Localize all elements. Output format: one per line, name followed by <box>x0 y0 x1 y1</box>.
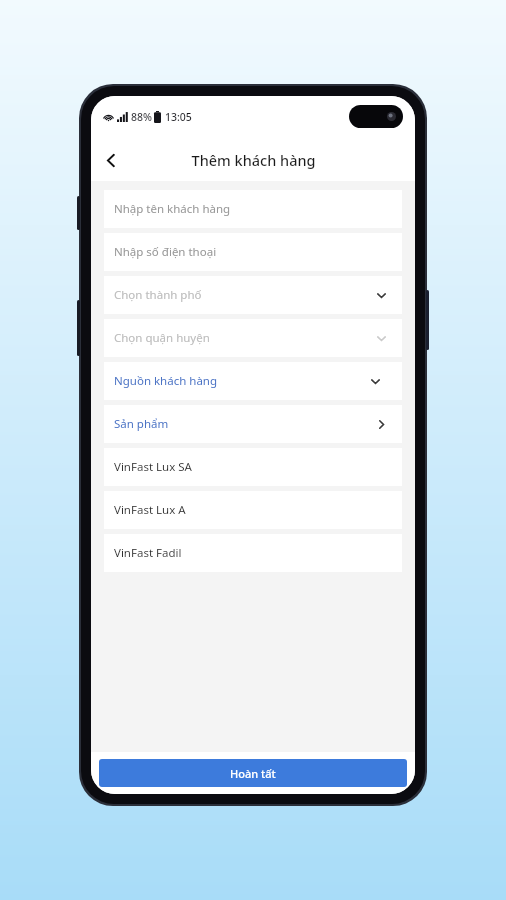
staticText: Nhập số điện thoại <box>114 244 217 260</box>
staticText: 13:05 <box>165 110 192 124</box>
button[interactable]: Nguồn khách hàng <box>104 362 402 400</box>
staticText: VinFast Lux SA <box>114 459 192 475</box>
staticText: VinFast Lux A <box>114 502 186 518</box>
button[interactable]: Sản phẩm <box>104 405 402 443</box>
staticText: Thêm khách hàng <box>191 150 316 170</box>
button[interactable]: Hoàn tất <box>99 759 407 787</box>
staticText: Nhập tên khách hàng <box>114 201 231 217</box>
staticText: 88% <box>131 110 152 124</box>
staticText: Hoàn tất <box>230 766 276 781</box>
button[interactable]: VinFast Lux A <box>104 491 402 529</box>
staticText: Sản phẩm <box>114 416 169 432</box>
staticText: Chọn thành phố <box>114 287 202 303</box>
button[interactable]: Nhập số điện thoại <box>104 233 402 271</box>
button[interactable]: VinFast Fadil <box>104 534 402 572</box>
staticText: Chọn quận huyện <box>114 330 210 346</box>
staticText: Nguồn khách hàng <box>114 373 218 389</box>
button[interactable]: Nhập tên khách hàng <box>104 190 402 228</box>
button[interactable]: Chọn quận huyện <box>104 319 402 357</box>
staticText: VinFast Fadil <box>114 545 182 561</box>
button[interactable]: Chọn thành phố <box>104 276 402 314</box>
button[interactable]: VinFast Lux SA <box>104 448 402 486</box>
button[interactable]: Back <box>91 140 131 180</box>
